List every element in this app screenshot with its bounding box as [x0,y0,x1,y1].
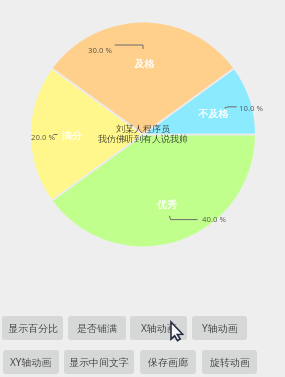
staticText: 旋转动画 [210,356,250,369]
button[interactable]: 显示百分比 [2,316,63,340]
button[interactable]: 显示中间文字 [64,350,134,374]
button[interactable]: 是否铺满 [68,316,126,340]
staticText: 是否铺满 [77,322,117,335]
button[interactable]: Y轴动画 [192,316,247,340]
button[interactable]: 保存画廊 [140,350,196,374]
staticText: 显示百分比 [8,322,58,335]
staticText: 保存画廊 [148,356,188,369]
button[interactable]: 旋转动画 [202,350,257,374]
button[interactable]: XY轴动画 [3,350,59,374]
staticText: 显示中间文字 [69,356,129,369]
staticText: XY轴动画 [10,355,52,369]
staticText: X轴动画 [141,321,177,335]
button[interactable]: X轴动画 [130,316,187,340]
staticText: Y轴动画 [202,321,238,335]
